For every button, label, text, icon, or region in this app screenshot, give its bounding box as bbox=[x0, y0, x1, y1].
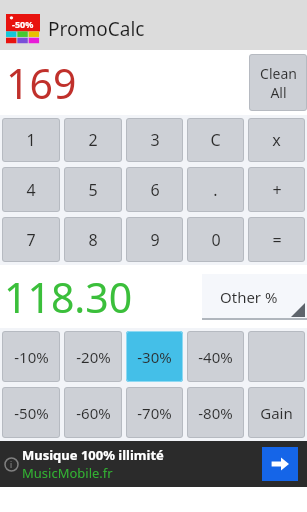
button[interactable]: 6 bbox=[126, 167, 183, 212]
staticText: -50% bbox=[12, 18, 34, 30]
staticText: Clean All bbox=[260, 64, 297, 102]
staticText: -40% bbox=[198, 347, 233, 367]
staticText: 6 bbox=[150, 179, 160, 201]
button[interactable]: 0 bbox=[187, 217, 244, 262]
staticText: Musique 100% illimité bbox=[22, 446, 164, 464]
staticText: 118.30 bbox=[4, 269, 202, 325]
button[interactable]: 2 bbox=[64, 118, 122, 162]
button[interactable]: -20% bbox=[64, 331, 122, 382]
button[interactable]: x bbox=[248, 118, 305, 162]
staticText: 1 bbox=[26, 129, 36, 151]
button[interactable]: -30% bbox=[126, 331, 183, 382]
button[interactable]: -70% bbox=[126, 387, 183, 438]
button[interactable]: -40% bbox=[187, 331, 244, 382]
button[interactable]: Clean All bbox=[249, 54, 307, 111]
button[interactable]: + bbox=[248, 167, 305, 212]
staticText: i bbox=[10, 459, 13, 470]
staticText: 9 bbox=[150, 229, 160, 251]
staticText: 169 bbox=[6, 55, 249, 111]
button[interactable]: 3 bbox=[126, 118, 183, 162]
staticText: 4 bbox=[26, 179, 36, 201]
button[interactable]: i bbox=[0, 441, 307, 487]
staticText: 7 bbox=[26, 229, 36, 251]
staticText: 2 bbox=[88, 129, 98, 151]
staticText: 8 bbox=[88, 229, 98, 251]
button[interactable]: 1 bbox=[2, 118, 60, 162]
button[interactable]: 5 bbox=[64, 167, 122, 212]
staticText: -80% bbox=[198, 403, 233, 423]
staticText: 3 bbox=[150, 129, 160, 151]
button[interactable]: -50% bbox=[2, 387, 60, 438]
other: PromoCalc icon bbox=[6, 14, 40, 44]
staticText: + bbox=[272, 179, 282, 201]
staticText: -50% bbox=[14, 403, 49, 423]
staticText: -60% bbox=[76, 403, 111, 423]
button[interactable]: . bbox=[187, 167, 244, 212]
button[interactable]: 9 bbox=[126, 217, 183, 262]
staticText: 5 bbox=[88, 179, 98, 201]
staticText: -20% bbox=[76, 347, 111, 367]
button[interactable]: -80% bbox=[187, 387, 244, 438]
staticText: Other % bbox=[220, 287, 278, 307]
button[interactable]: empty key bbox=[248, 331, 305, 382]
staticText: -70% bbox=[137, 403, 172, 423]
button[interactable]: -60% bbox=[64, 387, 122, 438]
staticText: x bbox=[272, 129, 281, 151]
staticText: Gain bbox=[260, 403, 293, 423]
button[interactable]: Gain bbox=[248, 387, 305, 438]
button[interactable]: 4 bbox=[2, 167, 60, 212]
button[interactable]: = bbox=[248, 217, 305, 262]
button[interactable]: 8 bbox=[64, 217, 122, 262]
button[interactable]: 7 bbox=[2, 217, 60, 262]
staticText: 0 bbox=[211, 229, 221, 251]
button[interactable]: C bbox=[187, 118, 244, 162]
staticText: PromoCalc bbox=[48, 16, 145, 42]
button[interactable]: -10% bbox=[2, 331, 60, 382]
button[interactable]: Open ad bbox=[262, 447, 298, 481]
staticText: . bbox=[213, 179, 218, 201]
button[interactable]: Other % bbox=[202, 274, 307, 320]
staticText: C bbox=[210, 129, 221, 151]
staticText: MusicMobile.fr bbox=[22, 464, 113, 482]
staticText: -10% bbox=[14, 347, 49, 367]
staticText: -30% bbox=[137, 347, 172, 367]
staticText: = bbox=[272, 229, 282, 251]
